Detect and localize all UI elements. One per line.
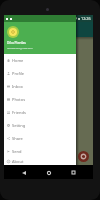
button[interactable]: Setting [4,119,76,132]
button[interactable]: Inbox [4,80,76,93]
staticText: Setting [12,123,26,128]
button[interactable]: Share [4,132,76,145]
button[interactable]: Profile [4,67,76,80]
staticText: dikapierdas@mail.com [7,46,33,49]
staticText: Photos [12,97,26,102]
staticText: Friends [12,110,26,115]
staticText: Dika Pierdas [7,41,26,45]
button[interactable]: Back [18,167,29,178]
button[interactable]: Photos [4,93,76,106]
staticText: Send [12,149,22,154]
staticText: Home [12,58,24,63]
staticText: Inbox [12,84,23,89]
button[interactable]: Add [78,151,89,162]
button[interactable]: Send [4,145,76,158]
staticText: Share [12,136,23,141]
button[interactable]: Home [4,54,76,67]
staticText: Profile [12,71,25,76]
button[interactable]: Home [43,167,54,178]
staticText: About [12,159,24,164]
button[interactable]: Recent apps [68,167,79,178]
staticText: 12:26 [81,16,91,21]
button[interactable]: Friends [4,106,76,119]
button[interactable]: About [4,158,76,165]
